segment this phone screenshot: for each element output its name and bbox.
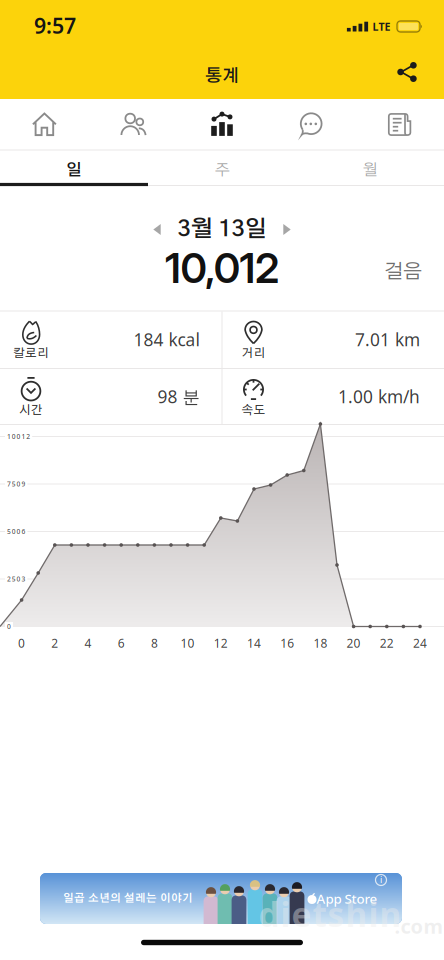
- staticText: 7509: [7, 480, 25, 488]
- staticText: App Store: [316, 890, 377, 907]
- button[interactable]: News: [355, 99, 444, 150]
- staticText: 8: [151, 635, 158, 651]
- staticText: 9:57: [34, 11, 76, 40]
- staticText: 16: [280, 635, 294, 651]
- staticText: 거리: [241, 347, 265, 359]
- button[interactable]: Friends: [89, 99, 178, 150]
- button[interactable]: Previous day: [142, 214, 172, 244]
- button[interactable]: 광고: [40, 873, 402, 924]
- staticText: 2503: [7, 575, 25, 583]
- button[interactable]: Share: [390, 55, 424, 89]
- staticText: 5006: [7, 527, 25, 536]
- button[interactable]: Chat: [266, 99, 355, 150]
- staticText: 7.01 km: [355, 328, 420, 351]
- staticText: 주: [214, 162, 229, 178]
- button[interactable]: Statistics: [178, 99, 266, 150]
- button[interactable]: 주: [148, 153, 296, 187]
- button[interactable]: Home: [0, 99, 89, 150]
- staticText: 14: [247, 635, 261, 651]
- button[interactable]: 월: [296, 153, 444, 187]
- staticText: 3월 13일: [177, 218, 266, 241]
- button[interactable]: 일: [0, 153, 148, 187]
- staticText: 20: [347, 635, 361, 651]
- staticText: 일곱 소년의 설레는 이야기: [63, 893, 193, 904]
- staticText: 0: [18, 635, 25, 651]
- staticText: 12: [214, 635, 228, 651]
- staticText: 98 분: [157, 385, 199, 408]
- staticText: 칼로리: [13, 347, 49, 359]
- staticText: 184 kcal: [133, 328, 199, 351]
- staticText: 10,012: [165, 243, 279, 293]
- staticText: 4: [84, 635, 91, 651]
- staticText: 18: [313, 635, 327, 651]
- staticText: 시간: [19, 404, 43, 416]
- staticText: dietshin: [258, 892, 401, 936]
- staticText: 10: [181, 635, 195, 651]
- staticText: 속도: [241, 404, 265, 416]
- staticText: 1.00 km/h: [338, 385, 420, 408]
- staticText: 24: [413, 635, 427, 651]
- staticText: LTE: [372, 19, 390, 34]
- staticText: 통계: [205, 67, 239, 85]
- staticText: 10012: [7, 432, 30, 441]
- staticText: 22: [380, 635, 394, 651]
- staticText: 일: [66, 162, 82, 178]
- staticText: 월: [362, 162, 377, 178]
- staticText: .com: [394, 913, 443, 939]
- staticText: 2: [51, 635, 58, 651]
- staticText: 0: [7, 622, 11, 631]
- button[interactable]: Next day: [272, 214, 302, 244]
- staticText: i: [380, 875, 382, 885]
- staticText: 6: [118, 635, 125, 651]
- staticText: 걸음: [384, 262, 422, 282]
